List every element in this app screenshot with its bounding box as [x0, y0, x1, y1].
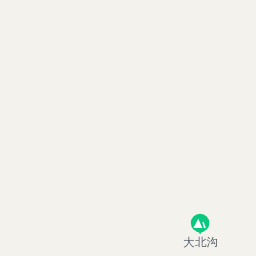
button[interactable]: 大北沟 scenic spot marker — [182, 210, 218, 248]
staticText: 大北沟 — [183, 235, 218, 249]
